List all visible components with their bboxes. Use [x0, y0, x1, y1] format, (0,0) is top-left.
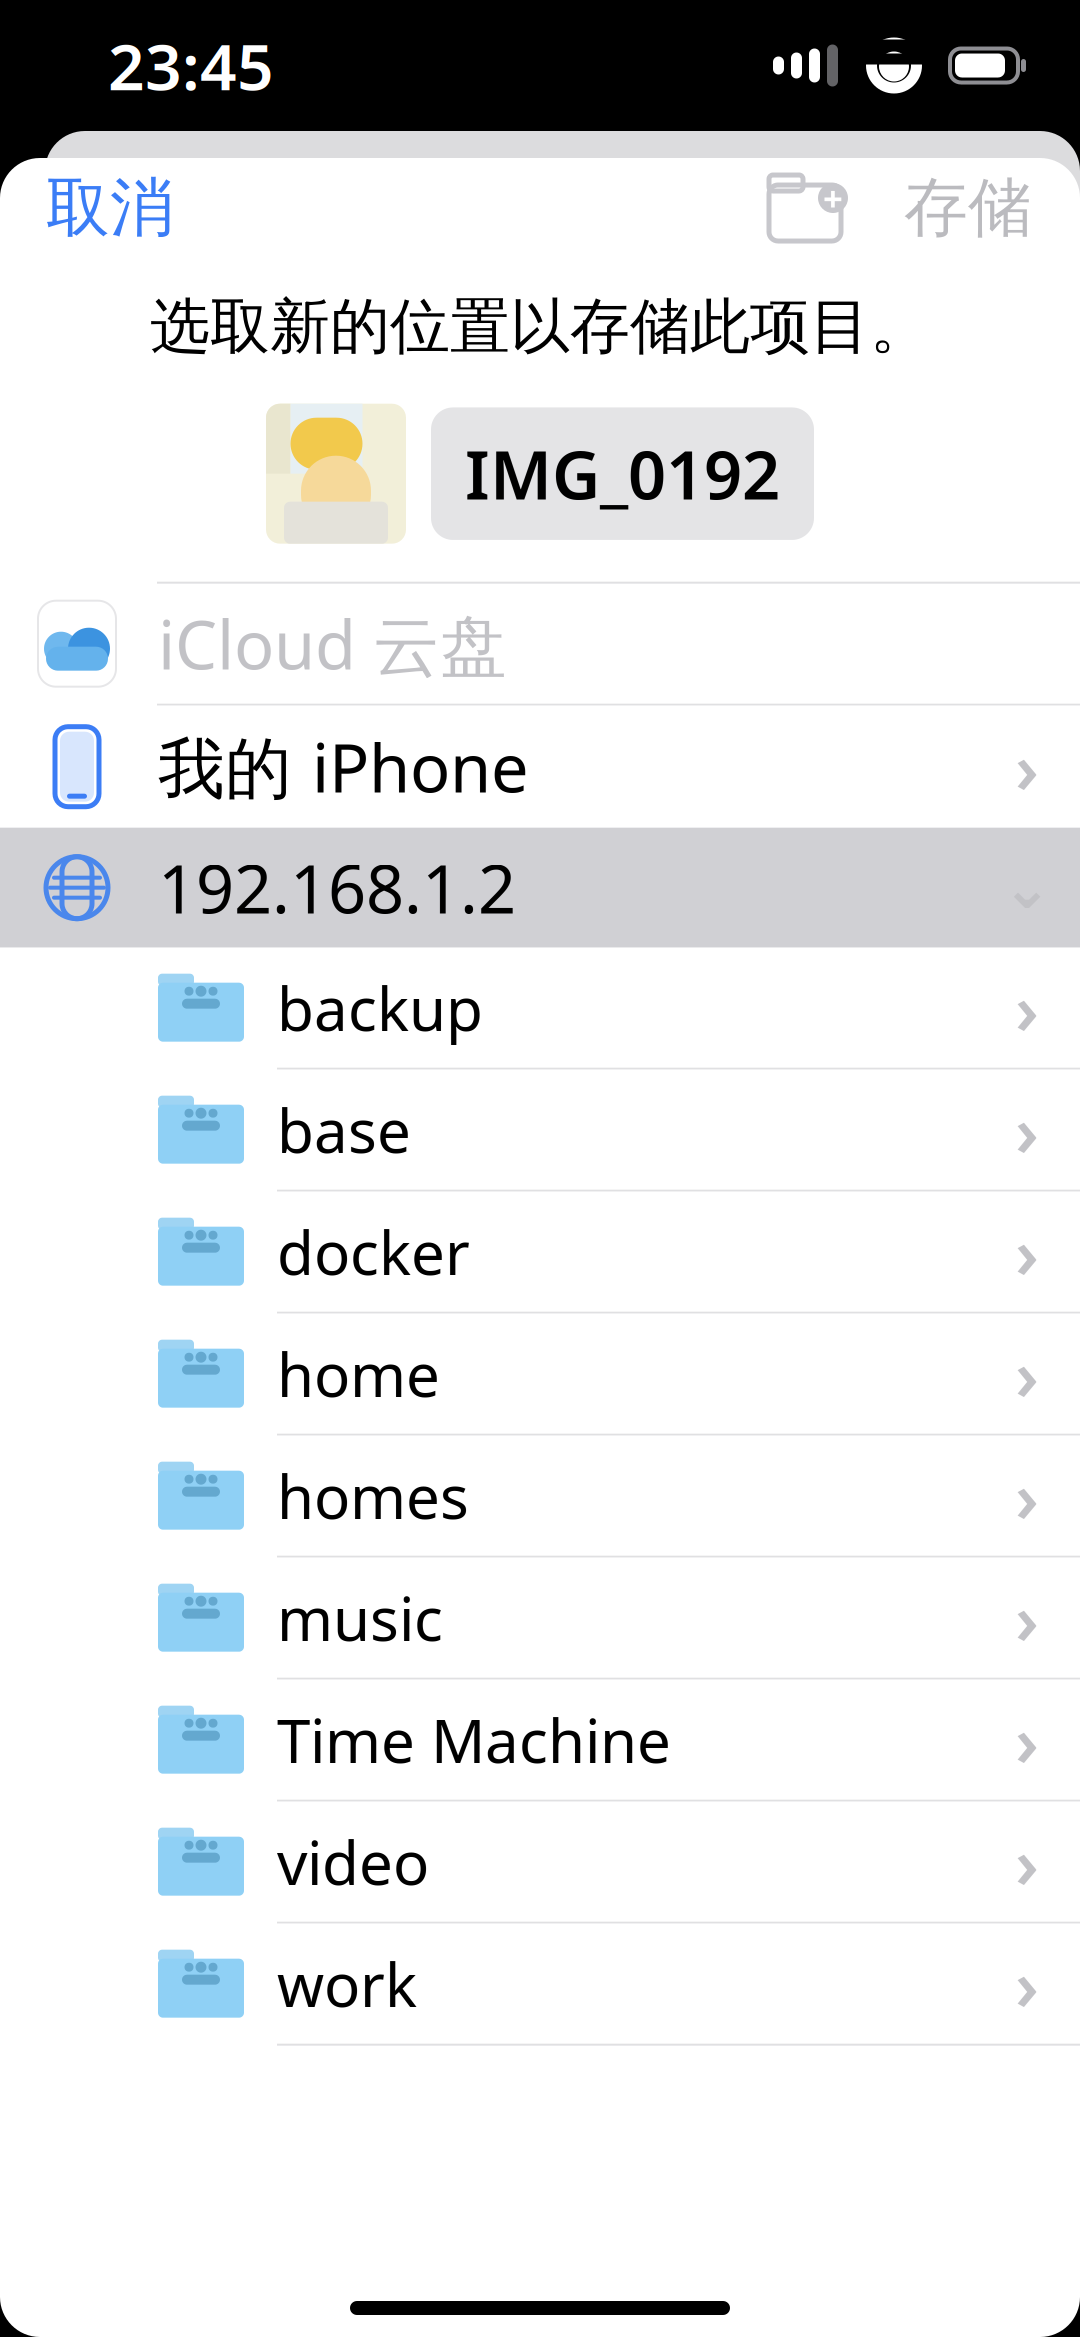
- staticText: iCloud 云盘: [158, 599, 507, 688]
- staticText: ›: [1015, 1328, 1039, 1420]
- button[interactable]: work: [0, 1924, 1080, 2046]
- staticText: Time Machine: [277, 1700, 671, 1780]
- staticText: ›: [1015, 1816, 1039, 1908]
- button[interactable]: 存储: [898, 157, 1038, 259]
- staticText: +: [823, 175, 843, 221]
- staticText: ›: [1015, 962, 1039, 1054]
- staticText: docker: [277, 1212, 470, 1292]
- button[interactable]: New Folder: [752, 173, 858, 243]
- staticText: homes: [277, 1456, 469, 1536]
- button[interactable]: docker: [0, 1192, 1080, 1314]
- button[interactable]: Time Machine: [0, 1680, 1080, 1802]
- staticText: backup: [277, 968, 483, 1048]
- button[interactable]: home: [0, 1314, 1080, 1436]
- staticText: ›: [1015, 721, 1039, 813]
- staticText: 存储: [904, 169, 1032, 247]
- staticText: ⌄: [1002, 854, 1051, 921]
- staticText: ›: [1015, 1450, 1039, 1542]
- staticText: 23:45: [108, 23, 274, 108]
- button[interactable]: 192.168.1.2: [0, 828, 1080, 948]
- staticText: ›: [1015, 1084, 1039, 1176]
- button[interactable]: music: [0, 1558, 1080, 1680]
- staticText: home: [277, 1334, 440, 1414]
- button[interactable]: backup: [0, 948, 1080, 1070]
- button[interactable]: video: [0, 1802, 1080, 1924]
- staticText: ›: [1015, 1938, 1039, 2030]
- staticText: base: [277, 1090, 411, 1170]
- staticText: IMG_0192: [465, 429, 780, 518]
- button[interactable]: base: [0, 1070, 1080, 1192]
- staticText: ›: [1015, 1206, 1039, 1298]
- button[interactable]: 取消: [40, 157, 180, 259]
- button[interactable]: 我的 iPhone: [0, 706, 1080, 828]
- staticText: ›: [1015, 1572, 1039, 1664]
- staticText: video: [277, 1822, 429, 1902]
- staticText: 我的 iPhone: [158, 722, 529, 811]
- staticText: 192.168.1.2: [158, 843, 516, 932]
- staticText: work: [277, 1944, 417, 2024]
- staticText: music: [277, 1578, 443, 1658]
- button[interactable]: homes: [0, 1436, 1080, 1558]
- staticText: 选取新的位置以存储此项目。: [150, 290, 930, 364]
- staticText: 取消: [46, 169, 174, 247]
- staticText: ›: [1015, 1694, 1039, 1786]
